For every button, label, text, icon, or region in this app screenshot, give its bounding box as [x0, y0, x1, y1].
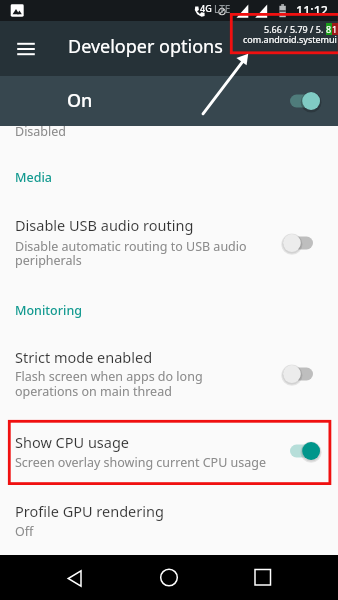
staticText: Developer options: [68, 34, 223, 59]
button[interactable]: Disable USB audio routing: [0, 202, 338, 280]
staticText: Disable USB audio routing: [15, 215, 194, 235]
button[interactable]: Media: [0, 155, 338, 187]
staticText: peripherals: [15, 252, 82, 269]
button[interactable]: Strict mode enabled: [0, 334, 338, 412]
staticText: 1: [332, 23, 338, 35]
staticText: Flash screen when apps do long: [15, 368, 203, 385]
staticText: Disabled: [15, 123, 67, 140]
button[interactable]: Recent apps: [244, 555, 282, 600]
staticText: operations on main thread: [15, 383, 172, 400]
staticText: 8: [326, 23, 332, 35]
staticText: Media: [15, 169, 52, 186]
staticText: 5.66 / 5.79 / 5.: [264, 23, 324, 35]
button[interactable]: Back: [56, 555, 94, 600]
staticText: com.android.systemui: [243, 33, 337, 45]
button[interactable]: Home: [150, 555, 188, 600]
staticText: LTE: [214, 2, 231, 16]
staticText: Screen overlay showing current CPU usage: [15, 454, 266, 471]
staticText: On: [67, 88, 93, 113]
staticText: 11:12: [296, 2, 329, 19]
staticText: 4G: [200, 2, 212, 14]
button[interactable]: Navigation menu: [13, 35, 39, 61]
button[interactable]: Show CPU usage: [0, 420, 338, 484]
staticText: Strict mode enabled: [15, 347, 153, 367]
button[interactable]: On: [0, 76, 338, 126]
staticText: Monitoring: [15, 302, 83, 319]
staticText: Profile GPU rendering: [15, 501, 164, 521]
staticText: Off: [15, 523, 34, 540]
staticText: Show CPU usage: [15, 432, 130, 452]
button[interactable]: Monitoring: [0, 288, 338, 320]
button[interactable]: Profile GPU rendering: [0, 489, 338, 552]
staticText: Disable automatic routing to USB audio: [15, 238, 247, 255]
